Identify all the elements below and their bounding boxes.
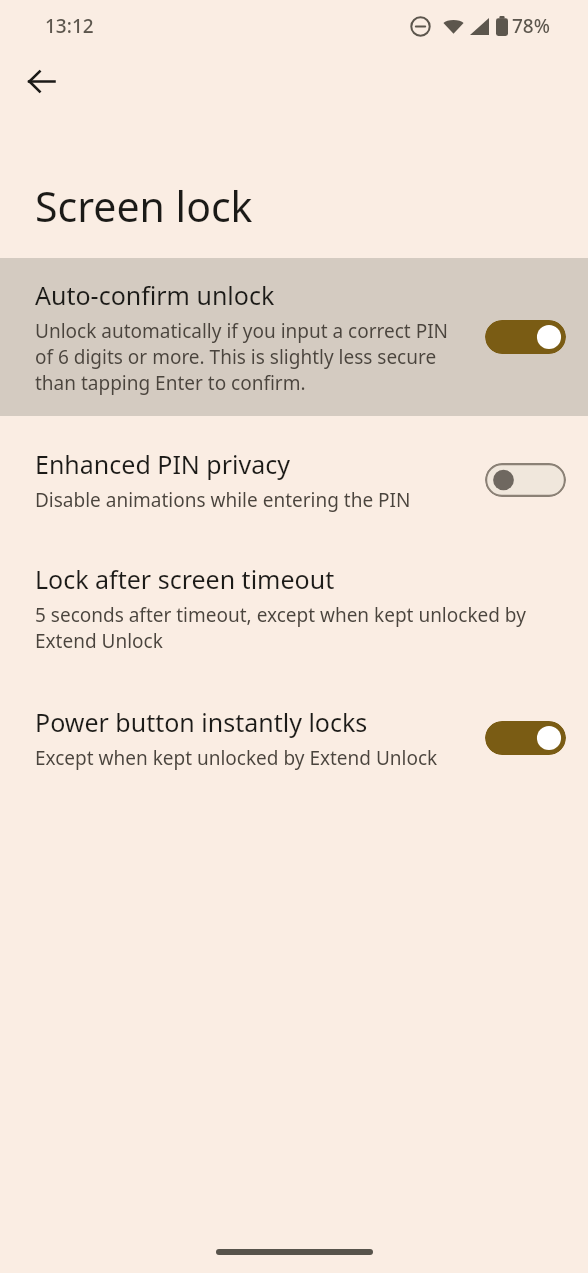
button[interactable]: Back xyxy=(17,57,65,105)
staticText: 78% xyxy=(512,13,550,39)
button[interactable]: Auto-confirm unlock xyxy=(0,258,588,416)
staticText: Unlock automatically if you input a corr… xyxy=(35,318,467,396)
staticText: Disable animations while entering the PI… xyxy=(35,487,411,513)
staticText: 5 seconds after timeout, except when kep… xyxy=(35,602,557,654)
button[interactable]: Enhanced PIN privacy xyxy=(0,433,588,527)
staticText: 13:12 xyxy=(45,13,94,39)
button[interactable]: Lock after screen timeout xyxy=(0,548,588,668)
staticText: Power button instantly locks xyxy=(35,705,368,739)
staticText: Screen lock xyxy=(35,178,253,234)
button[interactable]: On xyxy=(485,721,566,755)
staticText: Auto-confirm unlock xyxy=(35,278,275,312)
staticText: Enhanced PIN privacy xyxy=(35,447,290,481)
staticText: Lock after screen timeout xyxy=(35,562,335,596)
button[interactable]: Power button instantly locks xyxy=(0,691,588,785)
button[interactable]: On xyxy=(485,320,566,354)
staticText: Except when kept unlocked by Extend Unlo… xyxy=(35,745,438,771)
button[interactable]: Off xyxy=(485,463,566,497)
